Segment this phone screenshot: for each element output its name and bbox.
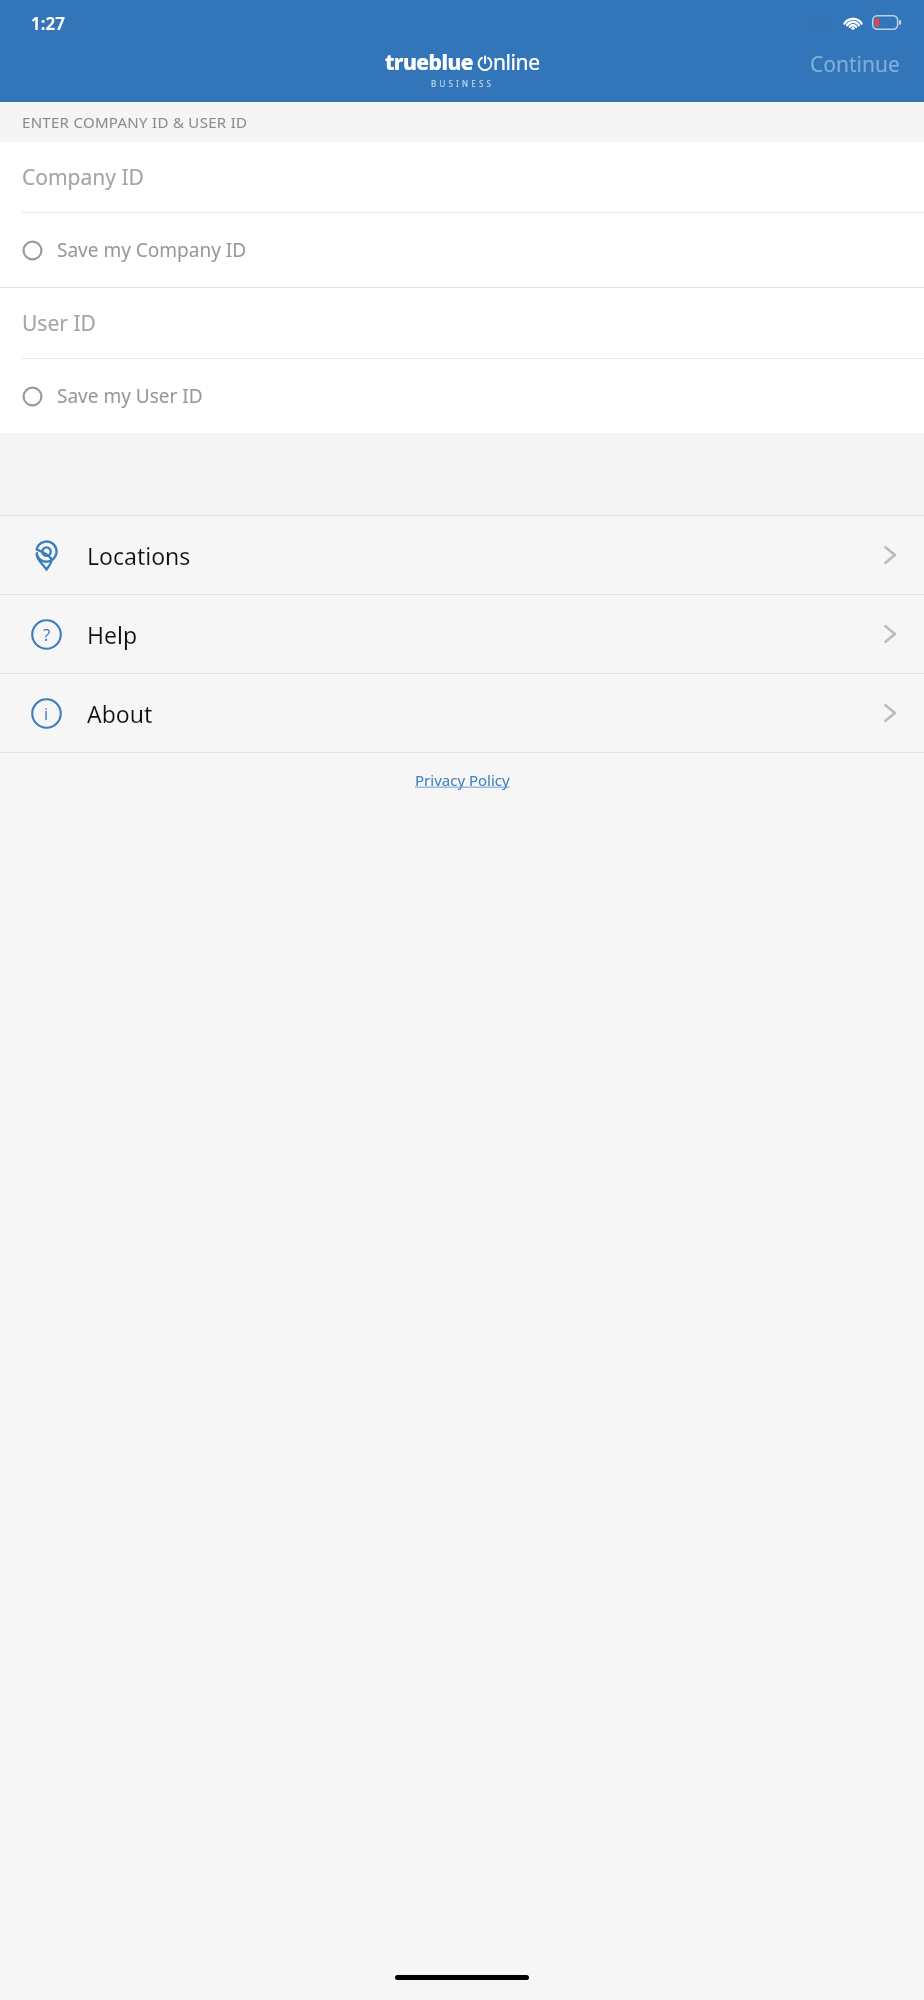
staticText: Continue	[810, 50, 900, 79]
other: Help	[31, 619, 62, 650]
other: Open Locations	[882, 542, 898, 568]
button[interactable]: Privacy Policy	[415, 770, 510, 790]
button[interactable]: Continue	[786, 44, 924, 85]
button[interactable]: Help	[0, 595, 924, 673]
other: About	[31, 698, 62, 729]
staticText: Help	[87, 619, 138, 650]
staticText: Save my Company ID	[57, 237, 247, 263]
button[interactable]: Locations	[0, 516, 924, 594]
other: Open Help	[882, 621, 898, 647]
staticText: Company ID	[22, 163, 144, 192]
staticText: About	[87, 698, 153, 729]
other: Locations	[31, 540, 62, 571]
button[interactable]: Save my Company ID	[0, 213, 924, 287]
button[interactable]: About	[0, 674, 924, 752]
button[interactable]: User ID	[0, 288, 924, 358]
staticText: nline	[493, 48, 540, 77]
button[interactable]: Save my User ID	[0, 359, 924, 433]
staticText: ?	[43, 623, 51, 646]
other: Open About	[882, 700, 898, 726]
staticText: 1:27	[31, 12, 65, 35]
staticText: User ID	[22, 309, 96, 338]
staticText: i	[44, 703, 49, 725]
button[interactable]: Company ID	[0, 142, 924, 212]
staticText: Save my User ID	[57, 383, 203, 409]
staticText: ENTER COMPANY ID & USER ID	[22, 112, 248, 132]
staticText: trueblue	[385, 48, 474, 77]
staticText: BUSINESS	[431, 78, 495, 89]
staticText: Locations	[87, 540, 191, 571]
